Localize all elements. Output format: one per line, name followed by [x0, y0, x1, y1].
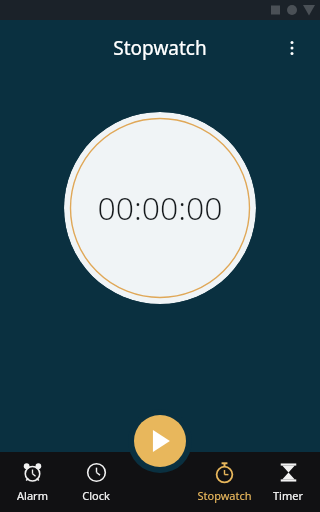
staticText: Clock: [82, 488, 110, 503]
staticText: Stopwatch: [197, 488, 252, 503]
button[interactable]: 00:00:00: [64, 112, 256, 304]
staticText: Stopwatch: [113, 35, 207, 61]
staticText: 00:00:00: [97, 186, 223, 230]
staticText: Alarm: [17, 488, 48, 503]
button[interactable]: More options: [272, 28, 312, 68]
button[interactable]: Clock: [64, 452, 128, 512]
button[interactable]: Start: [134, 415, 186, 467]
button[interactable]: Alarm: [0, 452, 64, 512]
button[interactable]: Timer: [256, 452, 320, 512]
staticText: Timer: [273, 488, 303, 503]
button[interactable]: Stopwatch: [192, 452, 256, 512]
